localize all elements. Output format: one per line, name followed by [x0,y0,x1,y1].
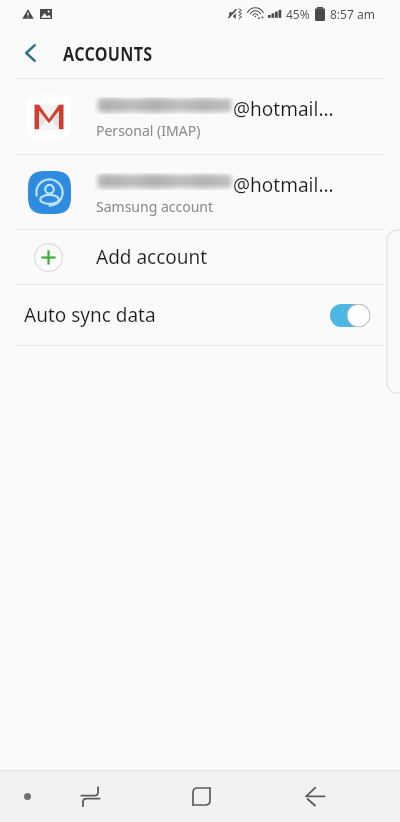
staticText: Personal (IMAP) [96,121,201,140]
staticText: @hotmail... [233,172,334,198]
button[interactable]: @hotmail... [0,79,400,154]
button[interactable]: Show navigation bar [0,770,54,822]
button[interactable]: Add account [0,230,400,284]
staticText: 8:57 am [330,6,375,22]
staticText: 45% [286,6,310,22]
button[interactable]: @hotmail... [0,155,400,229]
button[interactable]: Auto sync data [0,285,400,345]
staticText: Samsung account [96,197,214,216]
button[interactable]: Navigate up [6,29,54,77]
staticText: Auto sync data [24,302,156,328]
button[interactable]: Home [126,770,276,822]
staticText: ACCOUNTS [63,40,153,67]
staticText: Add account [96,244,208,270]
button[interactable]: Back [276,770,352,822]
staticText: @hotmail... [233,96,334,122]
button[interactable]: Recents [54,770,126,822]
